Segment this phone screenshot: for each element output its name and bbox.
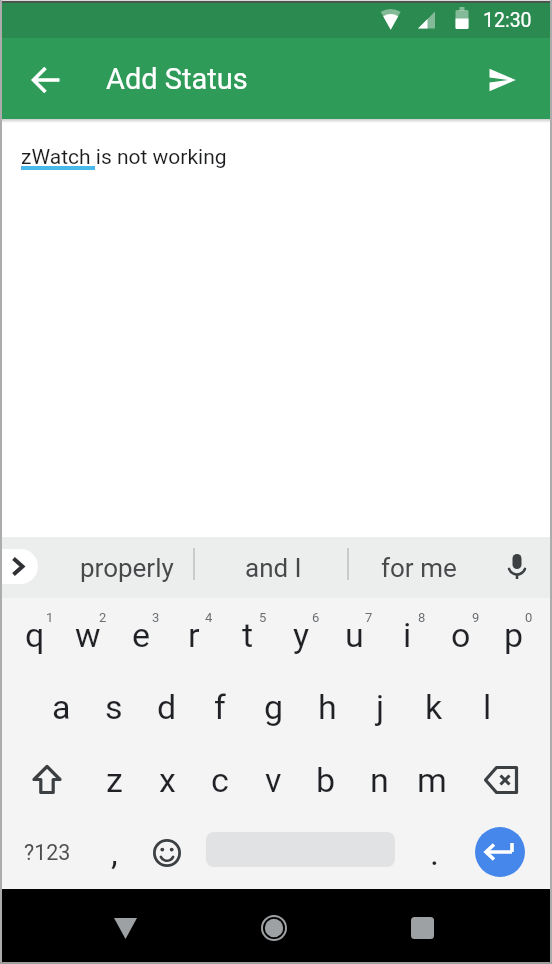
button[interactable]: u <box>328 598 380 671</box>
button[interactable]: for me <box>359 537 479 598</box>
button[interactable]: e <box>115 598 167 671</box>
button[interactable]: d <box>141 671 193 743</box>
staticText: , <box>111 833 118 873</box>
staticText: k <box>425 687 443 727</box>
staticText: 7 <box>365 610 373 625</box>
button[interactable]: and I <box>213 537 333 598</box>
staticText: . <box>430 833 439 873</box>
button[interactable]: j <box>354 671 406 743</box>
staticText: l <box>483 687 492 727</box>
button[interactable]: b <box>300 743 352 816</box>
button[interactable] <box>146 832 188 874</box>
button[interactable] <box>252 906 296 950</box>
staticText: o <box>451 615 471 655</box>
button[interactable] <box>500 548 534 586</box>
staticText: s <box>105 687 123 727</box>
staticText: i <box>403 615 412 655</box>
staticText: b <box>316 760 336 800</box>
button[interactable]: r <box>168 598 220 671</box>
button[interactable]: c <box>194 743 246 816</box>
staticText: Add Status <box>106 62 248 96</box>
staticText: 8 <box>418 610 426 625</box>
button[interactable] <box>18 750 76 810</box>
staticText: 9 <box>472 610 480 625</box>
button[interactable]: g <box>248 671 300 743</box>
button[interactable] <box>480 58 524 102</box>
staticText: ?123 <box>24 840 71 865</box>
button[interactable]: y <box>275 598 327 671</box>
staticText: z <box>106 760 123 800</box>
staticText: u <box>345 615 364 655</box>
button[interactable] <box>0 549 38 584</box>
staticText: 4 <box>205 610 213 625</box>
staticText: 1 <box>46 610 54 625</box>
button[interactable] <box>475 827 525 877</box>
staticText: y <box>293 615 310 655</box>
staticText: a <box>52 687 71 727</box>
staticText: 6 <box>312 610 320 625</box>
button[interactable]: , <box>88 816 140 889</box>
staticText: e <box>132 615 151 655</box>
staticText: 0 <box>525 610 533 625</box>
staticText: t <box>242 615 254 655</box>
button[interactable]: n <box>353 743 405 816</box>
button[interactable]: l <box>461 671 513 743</box>
button[interactable]: x <box>141 743 193 816</box>
staticText: 2 <box>99 610 107 625</box>
button[interactable] <box>472 750 532 810</box>
staticText: properly <box>80 553 174 583</box>
button[interactable]: p <box>488 598 540 671</box>
staticText: w <box>75 615 101 655</box>
button[interactable] <box>103 906 147 950</box>
staticText: x <box>159 760 176 800</box>
staticText: 3 <box>152 610 160 625</box>
staticText: p <box>504 615 524 655</box>
button[interactable]: q <box>9 598 61 671</box>
staticText: r <box>188 615 200 655</box>
staticText: for me <box>381 553 457 583</box>
button[interactable]: v <box>247 743 299 816</box>
button[interactable]: . <box>408 816 460 889</box>
staticText: d <box>157 687 177 727</box>
staticText: m <box>417 760 447 800</box>
button[interactable]: s <box>88 671 140 743</box>
button[interactable]: k <box>408 671 460 743</box>
staticText: and I <box>245 553 302 583</box>
button[interactable]: a <box>35 671 87 743</box>
staticText: 12:30 <box>483 9 532 32</box>
button[interactable]: ?123 <box>17 816 77 889</box>
staticText: n <box>370 760 389 800</box>
staticText: j <box>376 687 385 727</box>
button[interactable]: w <box>62 598 114 671</box>
button[interactable] <box>24 58 68 102</box>
button[interactable]: f <box>194 671 246 743</box>
staticText: f <box>214 687 226 727</box>
button[interactable]: h <box>301 671 353 743</box>
staticText: g <box>264 687 284 727</box>
staticText: v <box>265 760 282 800</box>
button[interactable]: o <box>435 598 487 671</box>
staticText: q <box>25 615 45 655</box>
button[interactable]: z <box>88 743 140 816</box>
staticText: zWatch is not working <box>21 145 227 170</box>
staticText: 5 <box>259 610 267 625</box>
button[interactable]: i <box>381 598 433 671</box>
staticText: h <box>318 687 337 727</box>
staticText: c <box>211 760 229 800</box>
button[interactable]: t <box>222 598 274 671</box>
button[interactable] <box>400 906 444 950</box>
button[interactable]: properly <box>66 537 187 598</box>
button[interactable]: m <box>406 743 458 816</box>
